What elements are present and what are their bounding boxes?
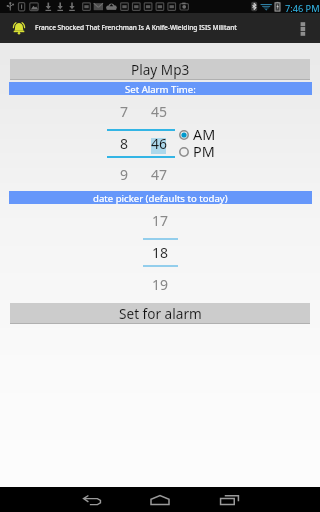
- staticText: 19: [152, 275, 169, 292]
- staticText: 18: [152, 243, 169, 260]
- button[interactable]: Back: [72, 487, 112, 512]
- button[interactable]: PM: [179, 142, 215, 162]
- staticText: PM: [193, 142, 215, 162]
- button[interactable]: More options: [291, 13, 315, 43]
- staticText: France Shocked That Frenchman Is A Knife…: [35, 23, 237, 32]
- staticText: 9: [120, 165, 129, 182]
- staticText: 7:46 PM: [285, 2, 320, 15]
- staticText: Set for alarm: [119, 304, 202, 323]
- staticText: 17: [152, 211, 169, 228]
- button[interactable]: AM: [179, 125, 216, 145]
- staticText: 47: [151, 165, 168, 182]
- staticText: AM: [193, 125, 216, 145]
- staticText: Set Alarm Time:: [125, 83, 196, 96]
- staticText: Play Mp3: [131, 60, 190, 79]
- staticText: 45: [151, 102, 168, 119]
- button[interactable]: Play Mp3: [10, 59, 310, 80]
- button[interactable]: Set for alarm: [10, 303, 310, 324]
- staticText: 7: [120, 102, 129, 119]
- staticText: date picker (defaults to today): [93, 192, 228, 205]
- staticText: 46: [151, 134, 168, 151]
- button[interactable]: Recent apps: [209, 487, 249, 512]
- staticText: 8: [120, 134, 129, 151]
- button[interactable]: Home: [140, 487, 180, 512]
